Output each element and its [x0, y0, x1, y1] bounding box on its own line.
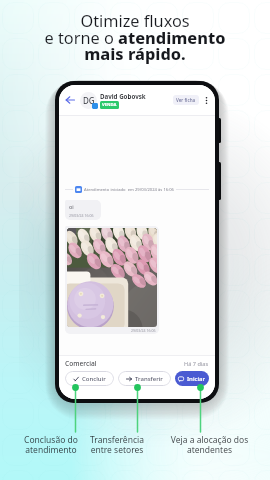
staticText: Transferir — [135, 375, 163, 383]
button[interactable]: Ver ficha — [173, 95, 199, 105]
staticText: DG — [83, 95, 95, 106]
button[interactable]: Concluir — [65, 371, 114, 386]
staticText: Comercial — [65, 359, 97, 368]
staticText: Iniciar — [187, 375, 206, 383]
staticText: Ver ficha — [176, 97, 196, 103]
button[interactable]: Transferir — [118, 371, 171, 386]
staticText: Veja a alocação dos atendentes — [157, 434, 262, 455]
staticText: 29/03/24 16:06 — [69, 213, 94, 218]
button[interactable]: Voltar — [64, 94, 76, 106]
staticText: Concluir — [82, 375, 106, 383]
button[interactable]: Mais opções — [201, 95, 211, 105]
staticText: David Gobovsk — [100, 92, 146, 100]
staticText: 29/03/24 16:06 — [131, 328, 156, 333]
staticText: oi — [69, 203, 74, 210]
staticText: VENDA — [102, 102, 117, 108]
button[interactable]: Iniciar — [175, 371, 209, 386]
staticText: Otimize fluxos e torne o atendimento mai… — [44, 10, 226, 64]
staticText: Conclusão do atendimento — [12, 434, 90, 455]
staticText: Há 7 dias — [184, 360, 209, 368]
staticText: Transferência entre setores — [84, 434, 150, 455]
staticText: Atendimento iniciado em 29/03/2024 às 16… — [84, 187, 174, 193]
